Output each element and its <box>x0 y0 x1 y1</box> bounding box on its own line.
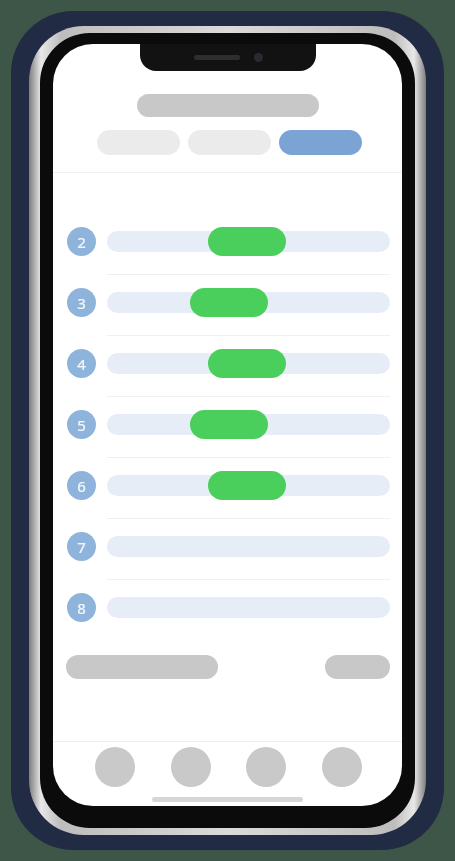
button[interactable]: 4 <box>67 349 96 378</box>
button[interactable]: Home <box>95 747 135 787</box>
staticText: 7 <box>77 537 86 557</box>
staticText: 6 <box>77 476 86 496</box>
button[interactable] <box>107 292 390 313</box>
button[interactable]: 7 <box>67 532 96 561</box>
button[interactable] <box>325 655 390 679</box>
button[interactable] <box>107 414 390 435</box>
staticText: 3 <box>77 293 86 313</box>
button[interactable]: Profile <box>322 747 362 787</box>
staticText: 2 <box>77 232 86 252</box>
button[interactable]: Search <box>171 747 211 787</box>
button[interactable] <box>137 94 319 117</box>
button[interactable] <box>66 655 218 679</box>
button[interactable] <box>279 130 362 155</box>
button[interactable] <box>107 353 390 374</box>
button[interactable] <box>107 231 390 252</box>
staticText: 5 <box>77 415 86 435</box>
button[interactable]: 6 <box>67 471 96 500</box>
button[interactable]: 2 <box>67 227 96 256</box>
button[interactable]: 5 <box>67 410 96 439</box>
button[interactable]: 8 <box>67 593 96 622</box>
staticText: 8 <box>77 598 86 618</box>
button[interactable]: Activity <box>246 747 286 787</box>
button[interactable] <box>107 475 390 496</box>
button[interactable]: 3 <box>67 288 96 317</box>
button[interactable] <box>97 130 180 155</box>
button[interactable] <box>188 130 271 155</box>
staticText: 4 <box>77 354 86 374</box>
